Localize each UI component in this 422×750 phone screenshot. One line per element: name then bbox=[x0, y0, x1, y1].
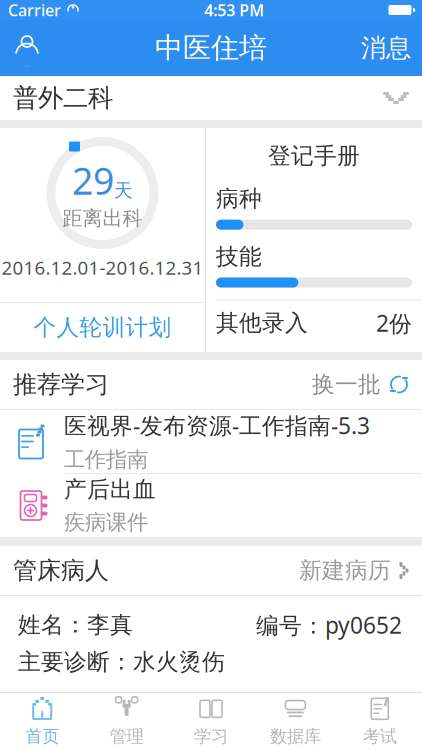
staticText: 姓名：李真 bbox=[18, 611, 133, 639]
staticText: 中医住培 bbox=[155, 31, 267, 65]
staticText: 新建病历 bbox=[299, 557, 391, 584]
button[interactable]: 数据库 bbox=[253, 693, 338, 750]
staticText: 技能 bbox=[216, 243, 262, 270]
button[interactable]: 换一批 bbox=[302, 361, 409, 408]
staticText: 主要诊断：水火烫伤 bbox=[18, 648, 225, 676]
staticText: 产后出血 bbox=[64, 475, 156, 503]
button[interactable]: 消息 bbox=[350, 20, 422, 76]
staticText: 编号：py0652 bbox=[256, 610, 402, 640]
staticText: 个人轮训计划 bbox=[33, 314, 171, 341]
staticText: 推荐学习 bbox=[13, 370, 109, 399]
staticText: 天 bbox=[114, 179, 133, 202]
staticText: 消息 bbox=[361, 32, 411, 63]
button[interactable]: 医视界-发布资源-工作指南-5.3 bbox=[0, 410, 422, 474]
staticText: 病种 bbox=[216, 185, 262, 213]
button[interactable]: 新建病历 bbox=[289, 547, 409, 594]
staticText: 登记手册 bbox=[268, 142, 360, 170]
button[interactable]: 个人中心 bbox=[0, 20, 54, 76]
staticText: 2份 bbox=[376, 308, 412, 338]
button[interactable]: 考试 bbox=[338, 693, 422, 750]
button[interactable]: 普外二科 bbox=[0, 76, 422, 120]
staticText: 普外二科 bbox=[13, 82, 113, 113]
staticText: 数据库 bbox=[270, 726, 321, 747]
staticText: 管床病人 bbox=[13, 556, 109, 585]
button[interactable]: 个人轮训计划 bbox=[0, 303, 205, 352]
staticText: 管理 bbox=[110, 726, 144, 747]
staticText: 工作指南 bbox=[64, 446, 148, 473]
button[interactable]: 首页 bbox=[0, 693, 84, 750]
staticText: 2016.12.01-2016.12.31 bbox=[1, 255, 203, 280]
staticText: 考试 bbox=[363, 726, 397, 747]
button[interactable]: 产后出血 bbox=[0, 474, 422, 537]
button[interactable]: 学习 bbox=[169, 693, 253, 750]
staticText: 其他录入 bbox=[216, 309, 308, 337]
staticText: 换一批 bbox=[312, 371, 381, 398]
staticText: 29 bbox=[72, 155, 114, 205]
staticText: 医视界-发布资源-工作指南-5.3 bbox=[64, 410, 370, 440]
staticText: Carrier bbox=[8, 0, 61, 21]
staticText: 学习 bbox=[194, 726, 228, 747]
staticText: 疾病课件 bbox=[64, 509, 148, 535]
staticText: 距离出科 bbox=[62, 206, 142, 231]
button[interactable]: 姓名：李真 bbox=[0, 596, 422, 672]
staticText: 4:53 PM bbox=[204, 0, 264, 21]
button[interactable]: 其他录入 bbox=[216, 300, 412, 345]
staticText: 首页 bbox=[25, 726, 59, 747]
button[interactable]: 管理 bbox=[84, 693, 169, 750]
